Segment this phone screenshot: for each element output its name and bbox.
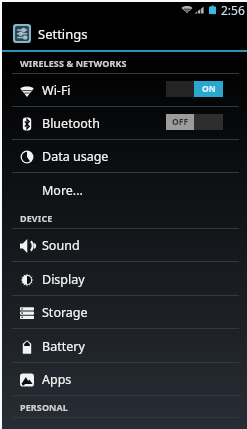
button[interactable]: More... [0,174,247,207]
staticText: Battery [42,338,85,355]
staticText: DEVICE [20,212,53,224]
button[interactable]: Battery [0,330,247,363]
staticText: Apps [42,371,72,388]
button[interactable]: Sound [0,229,247,262]
staticText: Data usage [42,148,109,165]
staticText: Storage [42,304,88,321]
staticText: ON [202,83,216,95]
button[interactable]: Display [0,263,247,296]
button[interactable]: Bluetooth [0,107,247,140]
staticText: Display [42,271,85,288]
staticText: Bluetooth [42,115,101,132]
button[interactable]: Settings [0,17,247,50]
staticText: Wi-Fi [42,82,71,99]
button[interactable]: Switch on [166,81,223,97]
button[interactable]: Switch off [166,114,223,130]
staticText: Sound [42,237,80,254]
button[interactable]: Apps [0,363,247,396]
staticText: More... [42,182,83,199]
button[interactable]: Wi-Fi [0,74,247,107]
staticText: PERSONAL [20,401,68,413]
button[interactable]: Data usage [0,140,247,173]
staticText: 2:56 [221,2,245,18]
staticText: Settings [38,25,88,43]
staticText: WIRELESS & NETWORKS [20,57,127,69]
staticText: OFF [172,116,189,128]
button[interactable]: Storage [0,296,247,329]
